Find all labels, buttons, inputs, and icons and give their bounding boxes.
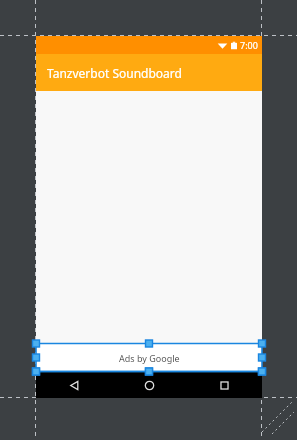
button[interactable]: Back [36, 372, 112, 398]
button[interactable]: Home [112, 372, 187, 398]
button[interactable]: Tanzverbot Soundboard [36, 54, 262, 91]
button[interactable]: Recent apps [187, 372, 262, 398]
staticText: 7:00 [240, 39, 258, 51]
staticText: Ads by Google [119, 352, 180, 364]
staticText: Tanzverbot Soundboard [47, 65, 182, 81]
button[interactable]: Ads by Google [36, 344, 262, 372]
